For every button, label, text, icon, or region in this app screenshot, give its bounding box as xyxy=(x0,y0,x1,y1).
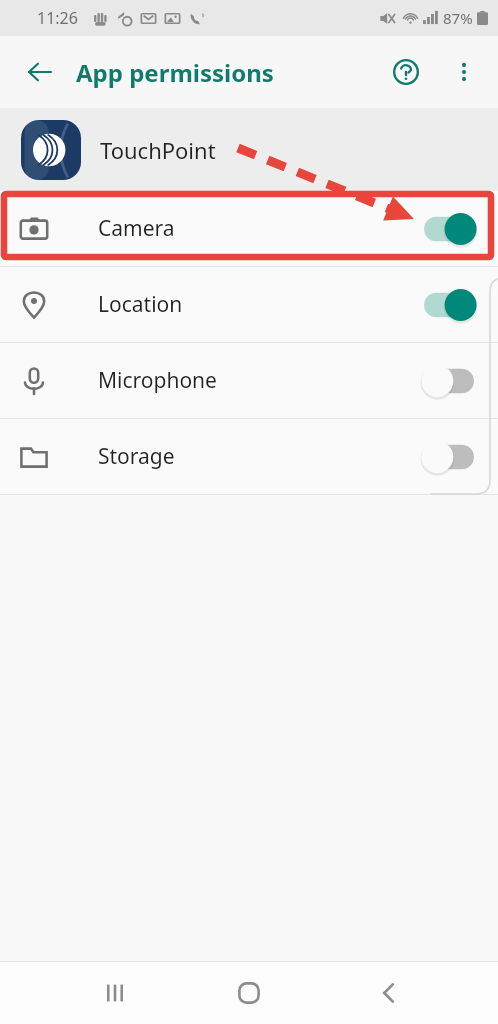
staticText: Camera xyxy=(98,214,175,243)
staticText: App permissions xyxy=(76,56,274,89)
button[interactable]: Back xyxy=(362,966,416,1020)
button[interactable]: Storage xyxy=(0,419,498,494)
button[interactable]: Back xyxy=(18,50,62,94)
staticText: TouchPoint xyxy=(100,135,216,165)
button[interactable]: Microphone permission toggle xyxy=(412,356,486,406)
button[interactable]: Camera xyxy=(0,191,498,266)
button[interactable]: More options xyxy=(442,50,486,94)
staticText: Location xyxy=(98,290,183,319)
button[interactable]: Microphone xyxy=(0,343,498,418)
button[interactable]: Location xyxy=(0,267,498,342)
button[interactable]: Location permission toggle xyxy=(412,280,486,330)
staticText: 87% xyxy=(443,8,473,28)
button[interactable]: Home xyxy=(222,966,276,1020)
button[interactable]: Recent apps xyxy=(88,966,142,1020)
staticText: Microphone xyxy=(98,366,217,395)
button[interactable]: TouchPoint xyxy=(0,108,498,191)
staticText: Storage xyxy=(98,442,175,471)
staticText: 11:26 xyxy=(37,7,78,29)
button[interactable]: Camera permission toggle xyxy=(412,204,486,254)
button[interactable]: Help xyxy=(384,50,428,94)
button[interactable]: Storage permission toggle xyxy=(412,432,486,482)
